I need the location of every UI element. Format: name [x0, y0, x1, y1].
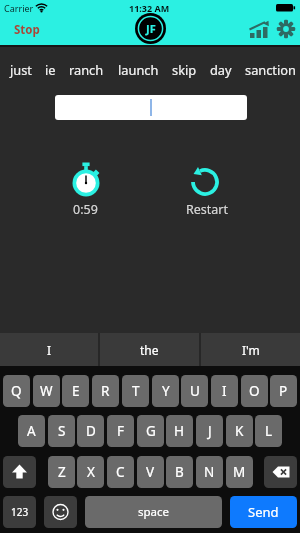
staticText: Y	[162, 382, 170, 400]
button[interactable]: W	[33, 375, 60, 407]
button[interactable]: E	[62, 375, 89, 407]
button[interactable]	[55, 95, 247, 120]
button[interactable]	[66, 158, 106, 216]
staticText: the	[140, 342, 159, 358]
staticText: JF	[146, 21, 156, 36]
button[interactable]: I	[211, 375, 238, 407]
button[interactable]: J	[196, 415, 223, 447]
staticText: R	[101, 382, 110, 400]
button[interactable]: T	[122, 375, 149, 407]
staticText: N	[204, 463, 215, 481]
button[interactable]: N	[196, 456, 223, 488]
button[interactable]: Y	[152, 375, 179, 407]
button[interactable]: I	[0, 333, 98, 366]
button[interactable]	[188, 162, 224, 214]
staticText: Carrier	[4, 2, 34, 14]
button[interactable]: I'm	[201, 333, 300, 366]
button[interactable]: 123	[3, 496, 36, 528]
staticText: B	[175, 463, 184, 481]
staticText: W	[40, 382, 53, 400]
staticText: ranch	[69, 61, 104, 78]
staticText: launch	[118, 61, 159, 78]
staticText: P	[279, 382, 288, 400]
staticText: I	[47, 342, 52, 358]
staticText: I'm	[242, 342, 260, 358]
staticText: D	[86, 422, 96, 440]
button[interactable]: Send	[230, 496, 297, 528]
staticText: sanction	[245, 61, 296, 78]
button[interactable]: the	[100, 333, 199, 366]
button[interactable]	[246, 18, 274, 42]
staticText: T	[132, 382, 140, 400]
staticText: K	[235, 422, 244, 440]
button[interactable]: X	[77, 456, 104, 488]
button[interactable]: O	[241, 375, 268, 407]
button[interactable]	[3, 456, 36, 488]
button[interactable]: Q	[3, 375, 30, 407]
button[interactable]: S	[48, 415, 75, 447]
button[interactable]: B	[166, 456, 193, 488]
staticText: 11:32 AM	[129, 2, 170, 14]
button[interactable]: A	[18, 415, 45, 447]
button[interactable]: K	[226, 415, 253, 447]
staticText: G	[146, 422, 156, 440]
staticText: C	[116, 463, 125, 481]
button[interactable]: F	[107, 415, 134, 447]
staticText: F	[117, 422, 125, 440]
staticText: U	[190, 382, 200, 400]
button[interactable]: C	[107, 456, 134, 488]
staticText: day	[210, 61, 232, 78]
button[interactable]: U	[181, 375, 208, 407]
staticText: E	[72, 382, 80, 400]
button[interactable]: M	[226, 456, 253, 488]
staticText: O	[249, 382, 260, 400]
staticText: Restart	[186, 201, 229, 218]
button[interactable]: Stop	[6, 19, 48, 41]
button[interactable]	[276, 19, 296, 39]
button[interactable]: space	[85, 496, 222, 528]
staticText: I	[222, 382, 227, 400]
staticText: H	[174, 422, 185, 440]
staticText: 123	[11, 505, 29, 519]
staticText: 0:59	[73, 201, 98, 218]
button[interactable]: H	[166, 415, 193, 447]
staticText: A	[27, 422, 36, 440]
staticText: L	[265, 422, 273, 440]
staticText: Z	[58, 463, 66, 481]
staticText: skip	[172, 61, 197, 78]
button[interactable]: R	[92, 375, 119, 407]
staticText: space	[138, 504, 170, 520]
button[interactable]: L	[255, 415, 282, 447]
button[interactable]	[264, 456, 297, 488]
staticText: Send	[248, 503, 279, 521]
button[interactable]: P	[270, 375, 297, 407]
button[interactable]	[44, 496, 77, 528]
staticText: J	[208, 422, 212, 440]
button[interactable]: D	[77, 415, 104, 447]
staticText: Stop	[14, 22, 40, 38]
staticText: M	[233, 463, 246, 481]
staticText: Q	[11, 382, 22, 400]
staticText: just	[10, 61, 32, 78]
button[interactable]: V	[137, 456, 164, 488]
staticText: ie	[45, 61, 56, 78]
staticText: V	[146, 463, 155, 481]
staticText: X	[87, 463, 95, 481]
staticText: S	[58, 422, 66, 440]
button[interactable]: G	[137, 415, 164, 447]
button[interactable]: JF	[135, 13, 166, 44]
button[interactable]: Z	[48, 456, 75, 488]
